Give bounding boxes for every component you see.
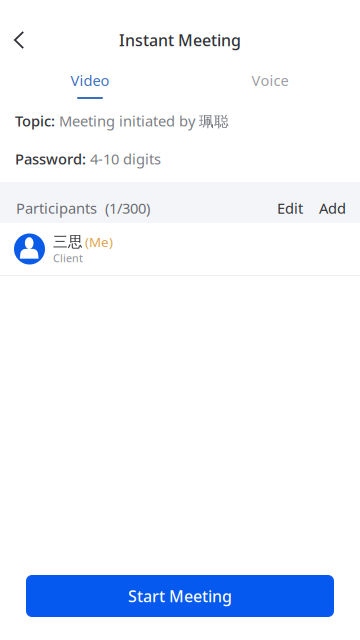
- staticText: Password:: [15, 149, 86, 168]
- staticText: Topic:: [15, 111, 55, 130]
- staticText: Edit: [277, 198, 303, 218]
- button[interactable]: Edit: [269, 195, 305, 221]
- button[interactable]: Add: [305, 195, 346, 221]
- staticText: Instant Meeting: [119, 29, 241, 51]
- staticText: Start Meeting: [128, 585, 232, 607]
- staticText: Voice: [251, 70, 288, 90]
- button[interactable]: 三思: [0, 223, 360, 276]
- staticText: Meeting initiated by 珮聪: [55, 111, 229, 131]
- staticText: 4-10 digits: [86, 149, 161, 168]
- staticText: (Me): [85, 233, 113, 251]
- button[interactable]: Start Meeting: [26, 575, 334, 617]
- button[interactable]: Voice: [180, 60, 360, 99]
- button[interactable]: Back: [0, 16, 38, 64]
- staticText: Video: [70, 70, 109, 90]
- staticText: 三思: [53, 233, 83, 251]
- staticText: Client: [53, 251, 83, 265]
- staticText: Add: [319, 198, 346, 218]
- button[interactable]: Video: [0, 60, 180, 99]
- staticText: Participants (1/300): [16, 198, 150, 218]
